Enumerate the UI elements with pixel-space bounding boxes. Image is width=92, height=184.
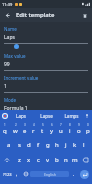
button[interactable]: Google (2, 113, 8, 119)
staticText: 99 (4, 61, 10, 68)
button[interactable]: Mode (0, 93, 92, 110)
staticText: y (50, 127, 54, 135)
staticText: Edit template (16, 11, 55, 19)
staticText: 5 (42, 123, 44, 127)
staticText: t (41, 127, 44, 135)
staticText: b (55, 156, 59, 164)
button[interactable]: 6 (47, 121, 56, 137)
staticText: , (16, 171, 18, 178)
button[interactable]: Lapse (34, 110, 59, 121)
staticText: u (59, 127, 63, 135)
staticText: Lapse (40, 113, 53, 119)
staticText: s (18, 141, 21, 149)
button[interactable]: Max value (0, 49, 92, 71)
button[interactable]: f (34, 137, 43, 152)
staticText: 3 (24, 123, 26, 127)
button[interactable]: Backspace (79, 152, 92, 167)
staticText: z (18, 156, 21, 164)
staticText: Max value (4, 53, 26, 59)
button[interactable]: c (34, 152, 43, 167)
button[interactable]: n (61, 152, 70, 167)
staticText: d (27, 141, 31, 149)
staticText: Mode (4, 97, 17, 103)
button[interactable]: l (79, 137, 88, 152)
staticText: ?123 (3, 172, 12, 177)
button[interactable]: Period (69, 167, 78, 181)
button[interactable]: Space (30, 171, 69, 177)
button[interactable]: s (14, 137, 24, 152)
staticText: 8 (69, 123, 71, 127)
staticText: Laps (4, 34, 15, 41)
staticText: Formula 1 (4, 105, 28, 110)
button[interactable]: 5 (38, 121, 47, 137)
staticText: v (46, 156, 50, 164)
button[interactable]: j (61, 137, 70, 152)
staticText: . (73, 171, 75, 178)
button[interactable]: Enter (80, 170, 89, 179)
staticText: 2 (15, 123, 17, 127)
button[interactable]: b (52, 152, 61, 167)
button[interactable]: Change language (21, 167, 30, 181)
staticText: 0 (87, 123, 89, 127)
button[interactable]: h (52, 137, 61, 152)
staticText: English (44, 172, 56, 177)
button[interactable]: g (43, 137, 52, 152)
staticText: w (13, 127, 18, 135)
staticText: f (37, 141, 40, 149)
staticText: l (83, 141, 85, 149)
button[interactable]: 8 (65, 121, 74, 137)
button[interactable]: 7 (56, 121, 65, 137)
staticText: Increment value (4, 75, 39, 81)
button[interactable]: z (14, 152, 24, 167)
staticText: Laps (16, 113, 26, 119)
staticText: g (46, 141, 50, 149)
button[interactable]: Name (0, 22, 92, 49)
button[interactable]: ?123 (1, 167, 13, 181)
button[interactable]: Delete (80, 11, 89, 20)
staticText: x (27, 156, 31, 164)
button[interactable]: 2 (10, 121, 20, 137)
button[interactable]: 9 (74, 121, 83, 137)
staticText: m (72, 156, 78, 164)
staticText: p (86, 127, 90, 135)
button[interactable]: a (4, 137, 14, 152)
button[interactable]: Voice input (84, 113, 90, 119)
staticText: 9 (78, 123, 80, 127)
staticText: 4 (33, 123, 35, 127)
staticText: c (37, 156, 40, 164)
staticText: Lamps (64, 113, 79, 119)
staticText: o (77, 127, 81, 135)
staticText: a (7, 141, 11, 149)
button[interactable]: 0 (83, 121, 92, 137)
staticText: 11:39 (2, 2, 13, 7)
button[interactable]: Lamps (59, 110, 84, 121)
button[interactable]: m (70, 152, 79, 167)
staticText: k (73, 141, 77, 149)
button[interactable]: Back (3, 11, 12, 20)
button[interactable]: d (24, 137, 34, 152)
staticText: Name (4, 26, 17, 32)
staticText: i (69, 127, 71, 135)
button[interactable]: k (70, 137, 79, 152)
button[interactable]: 3 (20, 121, 29, 137)
staticText: 6 (51, 123, 53, 127)
staticText: 1 (4, 83, 7, 90)
staticText: 7 (60, 123, 62, 127)
staticText: h (55, 141, 59, 149)
button[interactable]: x (24, 152, 34, 167)
button[interactable]: 1 (0, 121, 10, 137)
button[interactable]: Shift (0, 152, 14, 167)
staticText: r (32, 127, 35, 135)
staticText: e (23, 127, 27, 135)
button[interactable]: v (43, 152, 52, 167)
staticText: n (64, 156, 68, 164)
button[interactable]: Comma (13, 167, 21, 181)
button[interactable]: 4 (29, 121, 38, 137)
staticText: q (3, 127, 7, 135)
button[interactable]: Increment value (0, 71, 92, 93)
staticText: 1 (4, 123, 6, 127)
staticText: j (65, 141, 67, 149)
button[interactable]: Laps (8, 110, 34, 121)
